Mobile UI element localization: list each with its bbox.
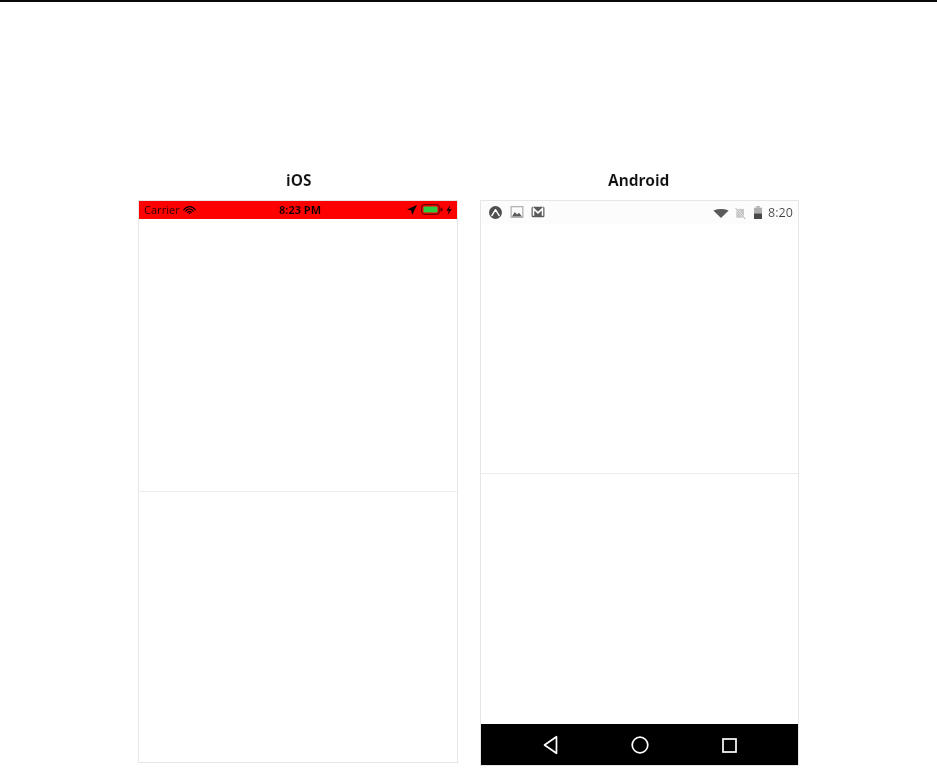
staticText: Carrier xyxy=(144,202,180,217)
staticText: 8:20 xyxy=(768,204,793,221)
button[interactable]: Screenshot notification xyxy=(510,205,524,219)
button[interactable]: Home xyxy=(620,725,660,765)
staticText: iOS xyxy=(286,169,312,190)
button[interactable]: Gmail notification xyxy=(531,205,545,219)
button[interactable]: Recents xyxy=(709,725,749,765)
staticText: 8:23 PM xyxy=(279,202,322,217)
staticText: Android xyxy=(608,169,670,190)
button[interactable]: Expo notification xyxy=(489,206,502,219)
button[interactable]: Back xyxy=(530,725,570,765)
